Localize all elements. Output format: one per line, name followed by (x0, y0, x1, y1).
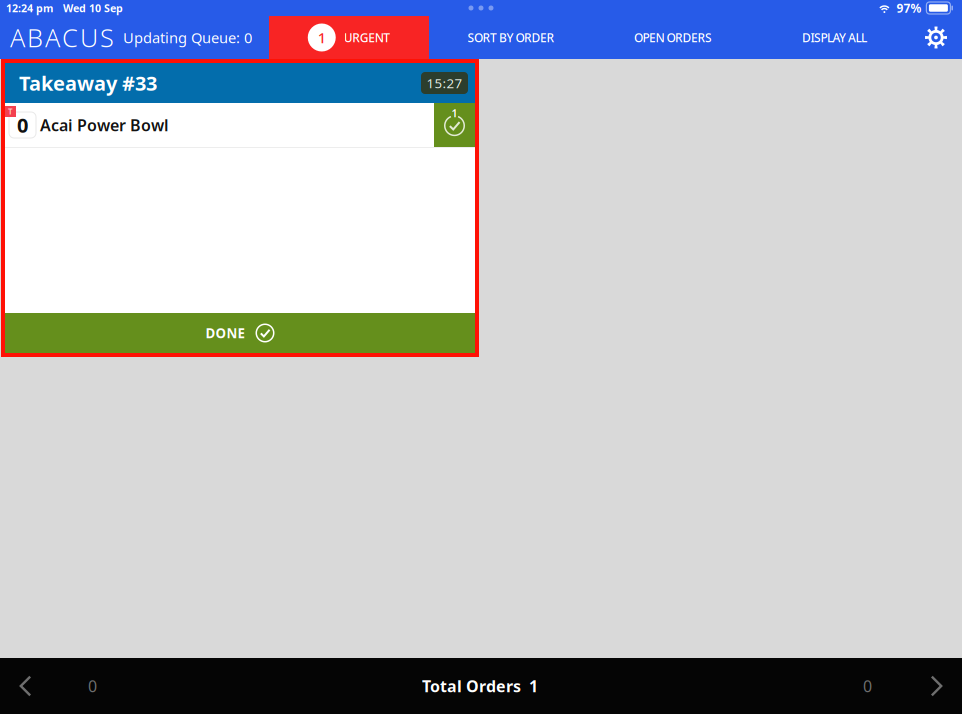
staticText: 97% (896, 0, 921, 16)
button[interactable]: Next page (863, 658, 962, 714)
staticText: SORT BY ORDER (467, 29, 554, 45)
staticText: 0 (17, 112, 28, 138)
button[interactable]: OPEN ORDERS (587, 16, 759, 59)
button[interactable]: Previous page (0, 658, 97, 714)
staticText: 12:24 pm (6, 1, 53, 15)
staticText: 15:27 (426, 74, 462, 92)
staticText: OPEN ORDERS (634, 29, 712, 45)
staticText: 1 (318, 28, 326, 47)
staticText: ABACUS (10, 21, 114, 54)
staticText: 1 (529, 675, 538, 697)
staticText: DONE (205, 324, 244, 342)
button[interactable]: SORT BY ORDER (435, 16, 587, 59)
button[interactable]: DISPLAY ALL (759, 16, 910, 59)
button[interactable]: 1 (269, 16, 429, 59)
staticText: 0 (863, 675, 872, 697)
staticText: 0 (88, 675, 97, 697)
staticText: Updating Queue: 0 (123, 28, 252, 47)
staticText: Takeaway #33 (19, 70, 157, 96)
staticText: T (8, 106, 13, 117)
staticText: DISPLAY ALL (802, 29, 867, 45)
staticText: 1 (451, 106, 457, 120)
staticText: Wed 10 Sep (63, 1, 123, 15)
staticText: Acai Power Bowl (40, 114, 169, 136)
button[interactable]: Settings (910, 16, 962, 59)
staticText: Total Orders (422, 675, 521, 697)
staticText: URGENT (344, 29, 390, 45)
button[interactable]: DONE (5, 313, 475, 353)
button[interactable]: Bump item (434, 103, 475, 147)
